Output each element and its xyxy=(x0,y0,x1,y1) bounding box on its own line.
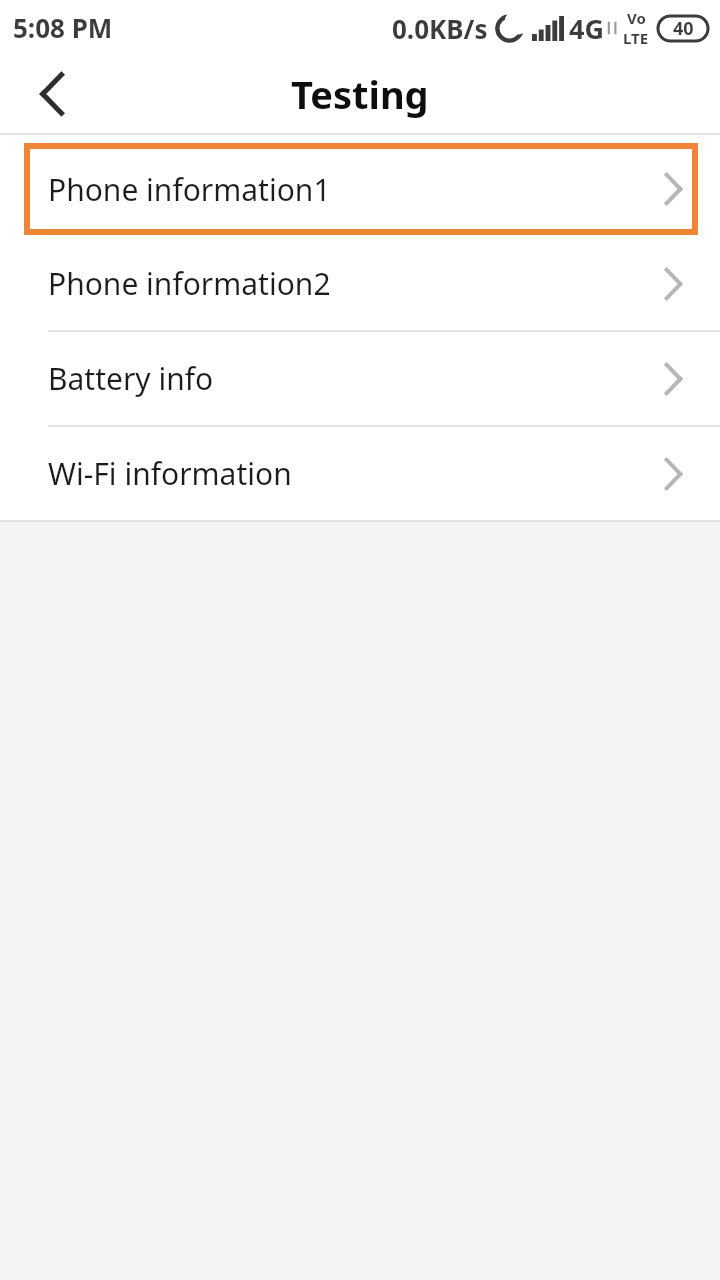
staticText: Wi-Fi information xyxy=(48,453,292,494)
staticText: Testing xyxy=(291,68,429,120)
staticText: Vo xyxy=(627,8,646,28)
button[interactable]: Phone information1 xyxy=(24,143,698,235)
staticText: 40 xyxy=(673,16,694,41)
staticText: LTE xyxy=(623,28,649,48)
button[interactable]: Wi-Fi information xyxy=(0,427,720,520)
staticText: Phone information1 xyxy=(48,169,331,210)
button[interactable]: Back xyxy=(0,55,104,133)
staticText: 5:08 PM xyxy=(13,10,113,45)
staticText: 4G xyxy=(569,10,604,47)
staticText: Phone information2 xyxy=(48,263,331,304)
button[interactable]: Battery info xyxy=(0,332,720,425)
staticText: 0.0KB/s xyxy=(392,11,488,46)
button[interactable]: Phone information2 xyxy=(0,237,720,330)
staticText: Battery info xyxy=(48,358,214,399)
